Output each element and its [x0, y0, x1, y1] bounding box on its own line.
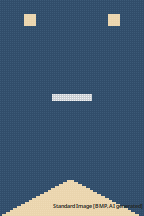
- staticText: Standard Image [BMP, AI generated]: [53, 202, 143, 210]
- button[interactable]: Right marker: [108, 14, 120, 26]
- button[interactable]: Left marker: [24, 14, 36, 26]
